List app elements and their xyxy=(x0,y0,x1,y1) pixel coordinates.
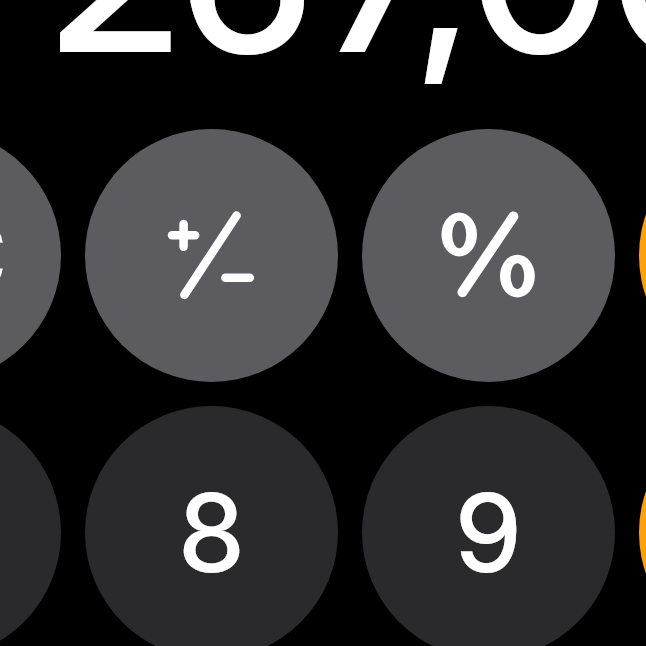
button[interactable]: All clear xyxy=(0,129,61,382)
staticText: 26 xyxy=(51,0,313,106)
staticText: AC xyxy=(0,190,7,321)
button[interactable]: Seven xyxy=(0,406,61,646)
button[interactable]: Nine xyxy=(362,406,615,646)
button[interactable]: Multiply xyxy=(639,406,646,646)
staticText: , xyxy=(419,0,471,106)
button[interactable]: Toggle sign xyxy=(85,129,338,382)
button[interactable]: Percent xyxy=(362,129,615,382)
button[interactable]: Divide xyxy=(639,129,646,382)
button[interactable]: Eight xyxy=(85,406,338,646)
staticText: 8 xyxy=(179,467,244,598)
staticText: 7 xyxy=(323,0,442,106)
staticText: 00 xyxy=(470,0,646,106)
staticText: 9 xyxy=(456,467,521,598)
